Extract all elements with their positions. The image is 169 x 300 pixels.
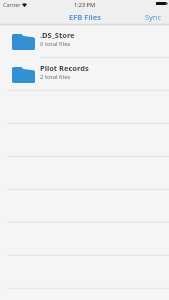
button[interactable]: Sync	[143, 11, 163, 23]
staticText: Carrier	[3, 1, 21, 8]
button[interactable]: .DS_Store	[0, 25, 169, 58]
staticText: Sync	[145, 12, 161, 22]
staticText: EFB Files	[69, 12, 101, 22]
staticText: 1:23 PM	[74, 1, 96, 9]
staticText: Pilot Records	[40, 63, 89, 73]
staticText: 2 total files	[40, 73, 71, 81]
staticText: .DS_Store	[40, 30, 75, 40]
button[interactable]: Pilot Records	[0, 58, 169, 91]
staticText: 0 total files	[40, 40, 71, 48]
